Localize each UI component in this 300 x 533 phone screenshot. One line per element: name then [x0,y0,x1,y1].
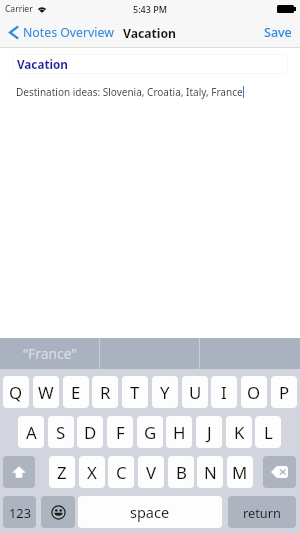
button[interactable]: E [63,376,89,408]
staticText: return [243,504,281,521]
staticText: P [279,381,290,404]
button[interactable]: P [271,376,297,408]
button[interactable]: J [196,416,222,448]
staticText: N [204,461,217,484]
button[interactable]: L [255,416,281,448]
staticText: 5:43 PM [133,3,167,15]
button[interactable]: H [166,416,192,448]
staticText: space [130,502,170,522]
button[interactable]: V [138,456,164,488]
staticText: G [144,421,157,444]
button[interactable]: 123 [3,496,36,528]
button[interactable]: Vacation [12,54,288,74]
staticText: T [130,381,140,404]
button[interactable]: T [122,376,148,408]
staticText: H [173,421,186,444]
staticText: Z [57,461,67,484]
staticText: Destination ideas: Slovenia, Croatia, It… [16,85,243,99]
staticText: V [146,461,157,484]
button[interactable]: Notes Overview [0,24,120,41]
button[interactable]: return [228,496,296,528]
staticText: U [189,381,202,404]
staticText: Q [9,381,23,404]
button[interactable]: Emoji [41,496,75,528]
button[interactable]: A [18,416,44,448]
staticText: A [26,421,37,444]
staticText: 123 [9,504,31,521]
button[interactable]: D [77,416,103,448]
staticText: K [234,421,245,444]
button[interactable]: Q [3,376,29,408]
button[interactable]: K [226,416,252,448]
staticText: Carrier [5,3,33,15]
staticText: Notes Overview [23,24,114,41]
staticText: “France” [23,344,77,363]
button[interactable]: Shift [3,456,35,488]
staticText: Vacation [17,56,68,72]
staticText: D [84,421,97,444]
staticText: L [264,421,273,444]
button[interactable]: U [182,376,208,408]
staticText: E [71,381,81,404]
staticText: J [207,421,212,444]
button[interactable]: C [108,456,134,488]
staticText: Vacation [123,25,177,42]
button[interactable]: O [241,376,267,408]
staticText: F [116,421,125,444]
button[interactable]: M [227,456,253,488]
button[interactable]: Save [256,24,300,41]
staticText: I [221,381,227,404]
staticText: R [100,381,111,404]
button[interactable]: Z [49,456,75,488]
button[interactable]: R [92,376,118,408]
button[interactable]: B [168,456,194,488]
button[interactable]: F [107,416,133,448]
button[interactable]: I [211,376,237,408]
staticText: O [247,381,261,404]
staticText: X [87,461,97,484]
staticText: B [176,461,187,484]
button[interactable]: N [197,456,223,488]
staticText: W [38,381,54,404]
staticText: C [116,461,127,484]
button[interactable]: G [137,416,163,448]
staticText: S [56,421,66,444]
staticText: M [232,461,248,484]
button[interactable]: space [78,496,222,528]
button[interactable]: Delete [263,456,296,488]
button[interactable]: “France” [0,338,99,369]
staticText: Y [160,381,170,404]
button[interactable]: S [48,416,74,448]
button[interactable]: W [33,376,59,408]
button[interactable]: Y [152,376,178,408]
button[interactable]: X [79,456,105,488]
